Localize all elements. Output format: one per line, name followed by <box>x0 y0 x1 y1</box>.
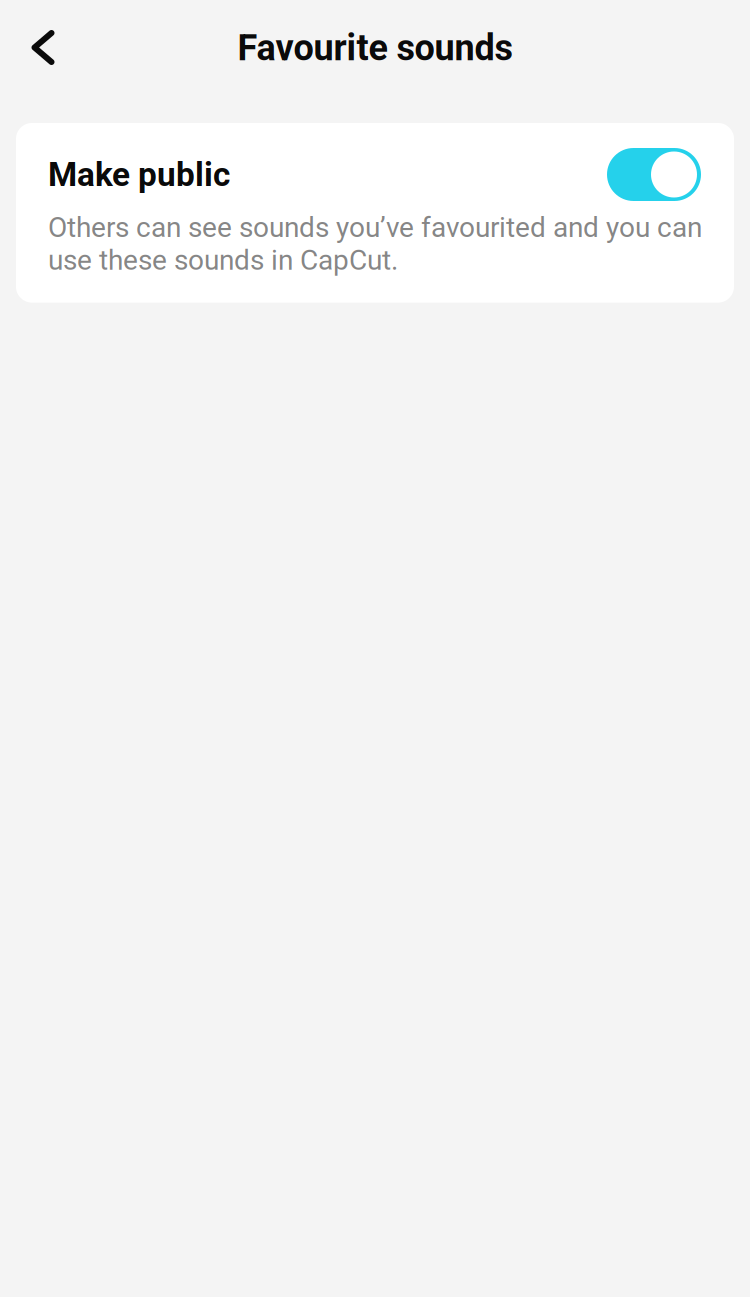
staticText: Favourite sounds <box>237 27 512 69</box>
staticText: Make public <box>48 155 230 194</box>
button[interactable]: Back <box>14 16 72 80</box>
button[interactable]: Make public <box>607 148 701 201</box>
staticText: Others can see sounds you’ve favourited … <box>48 211 702 277</box>
